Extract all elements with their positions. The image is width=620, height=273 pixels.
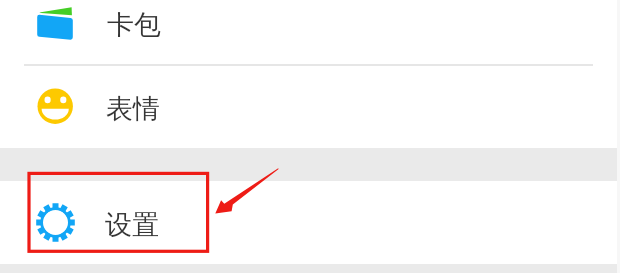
- staticText: 设置: [105, 208, 159, 242]
- button[interactable]: 卡包: [0, 0, 620, 64]
- button[interactable]: 设置: [0, 181, 620, 264]
- other: 表情: [0, 66, 106, 148]
- button[interactable]: 表情: [0, 66, 620, 148]
- other: 设置: [0, 181, 105, 264]
- staticText: 卡包: [107, 8, 161, 42]
- staticText: 表情: [106, 92, 160, 126]
- other: 卡包: [0, 0, 107, 64]
